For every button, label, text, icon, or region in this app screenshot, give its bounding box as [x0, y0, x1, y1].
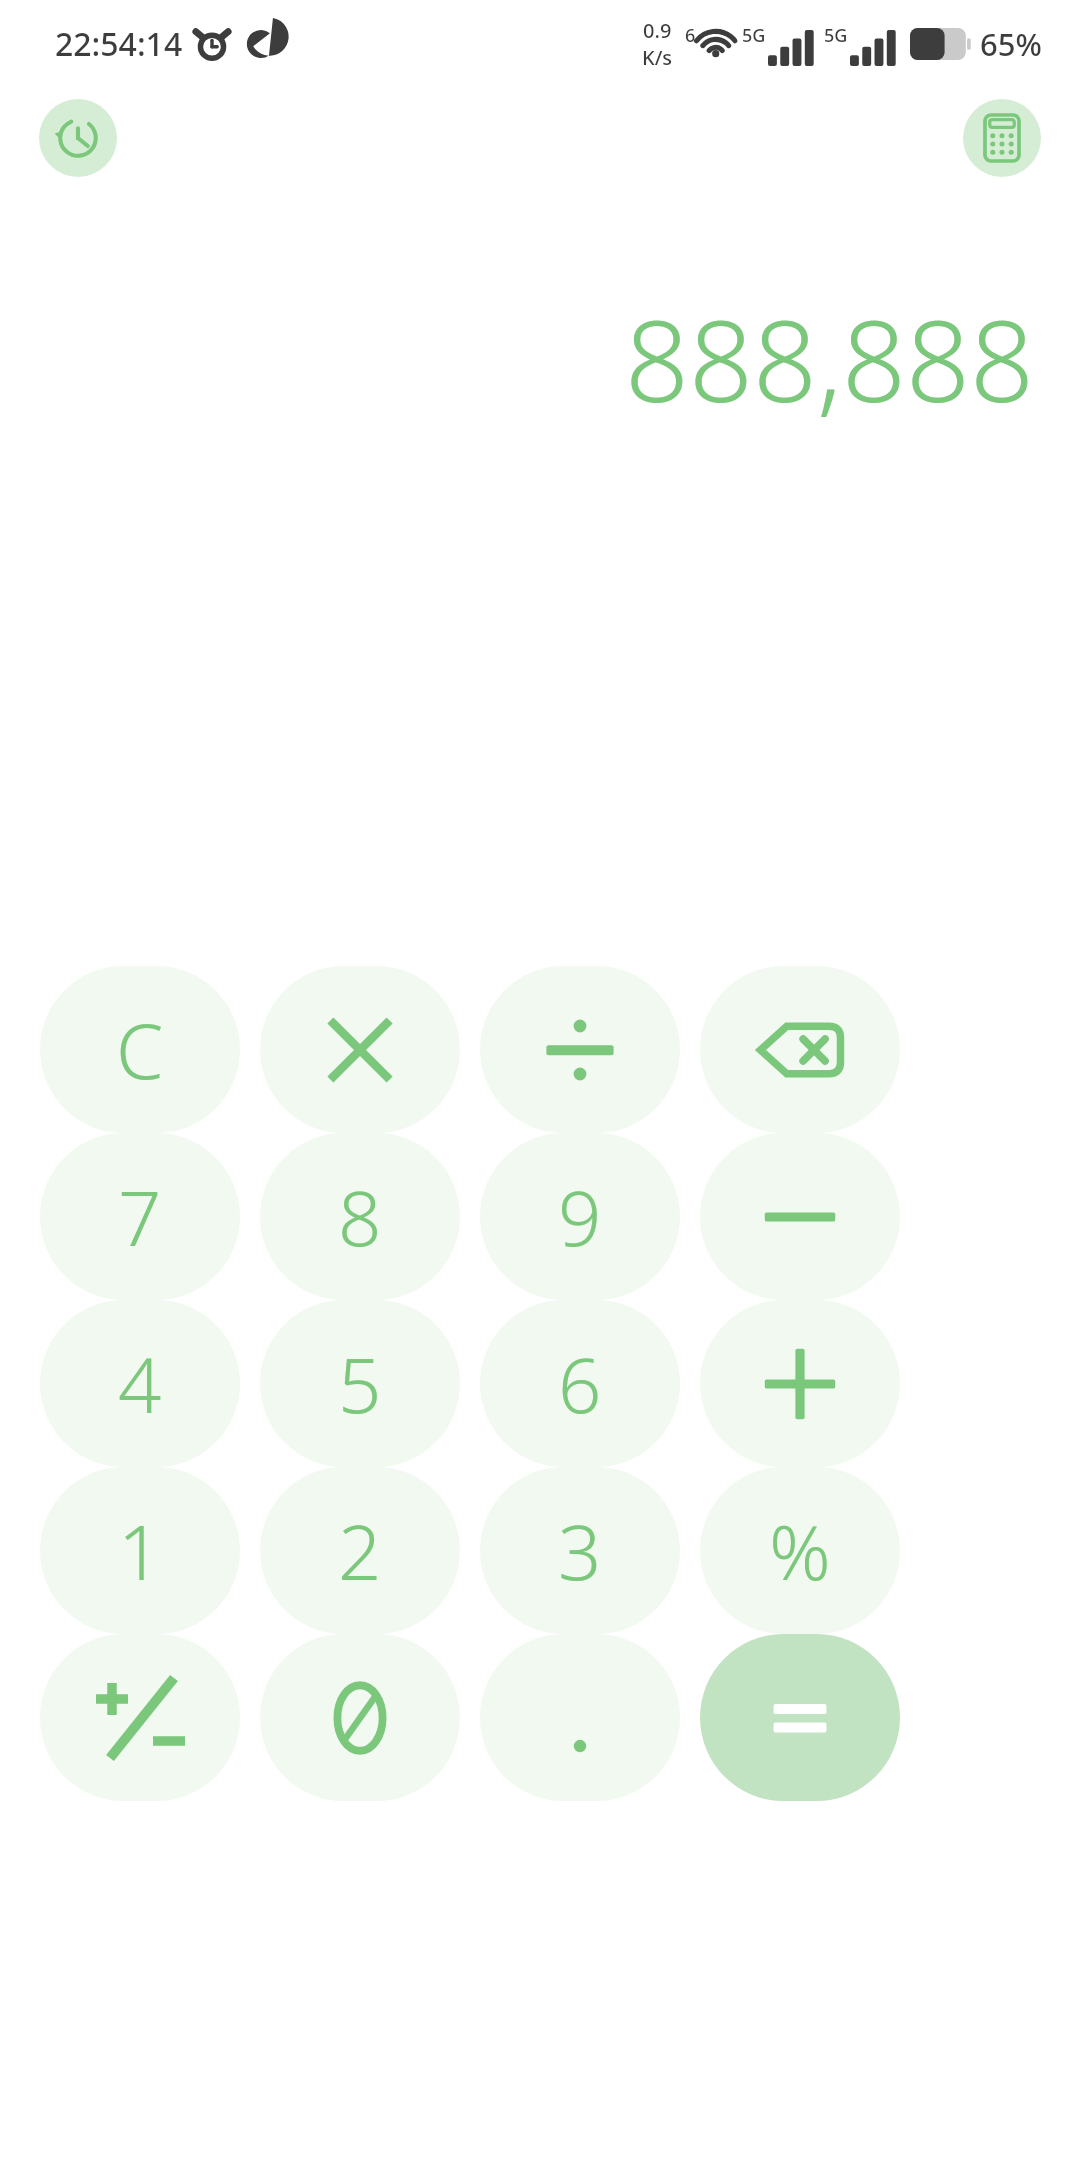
button[interactable]: 2 [260, 1467, 460, 1634]
staticText: 0.9 [643, 17, 672, 44]
button[interactable]: Plus minus [40, 1634, 240, 1801]
button[interactable]: Backspace [700, 966, 900, 1133]
staticText: K/s [642, 44, 673, 71]
button[interactable]: Decimal point [480, 1634, 680, 1801]
button[interactable]: Zero [260, 1634, 460, 1801]
button[interactable]: 3 [480, 1467, 680, 1634]
button[interactable]: Plus [700, 1300, 900, 1467]
button[interactable]: 1 [40, 1467, 240, 1634]
button[interactable]: Divide [480, 966, 680, 1133]
button[interactable]: 5 [260, 1300, 460, 1467]
staticText: 6 [558, 1332, 602, 1436]
button[interactable]: Equals [700, 1634, 900, 1801]
staticText: C [116, 998, 164, 1102]
staticText: 9 [558, 1165, 602, 1269]
button[interactable]: 7 [40, 1133, 240, 1300]
button[interactable]: 9 [480, 1133, 680, 1300]
staticText: 5G [824, 23, 848, 48]
button[interactable]: History [39, 99, 117, 177]
staticText: 888,888 [625, 282, 1034, 435]
button[interactable]: 4 [40, 1300, 240, 1467]
staticText: 4 [118, 1332, 162, 1436]
button[interactable]: Multiply [260, 966, 460, 1133]
staticText: 7 [118, 1165, 162, 1269]
staticText: 5G [742, 23, 766, 48]
button[interactable]: Minus [700, 1133, 900, 1300]
staticText: 5 [338, 1332, 382, 1436]
staticText: % [769, 1499, 831, 1603]
staticText: 2 [338, 1499, 382, 1603]
staticText: 6 [685, 23, 696, 48]
staticText: 22:54:14 [55, 22, 183, 66]
button[interactable]: 6 [480, 1300, 680, 1467]
staticText: 3 [558, 1499, 602, 1603]
button[interactable]: % [700, 1467, 900, 1634]
button[interactable]: Calculator mode [963, 99, 1041, 177]
button[interactable]: 8 [260, 1133, 460, 1300]
button[interactable]: C [40, 966, 240, 1133]
staticText: 8 [338, 1165, 382, 1269]
staticText: 65% [980, 23, 1042, 65]
staticText: 1 [118, 1499, 162, 1603]
